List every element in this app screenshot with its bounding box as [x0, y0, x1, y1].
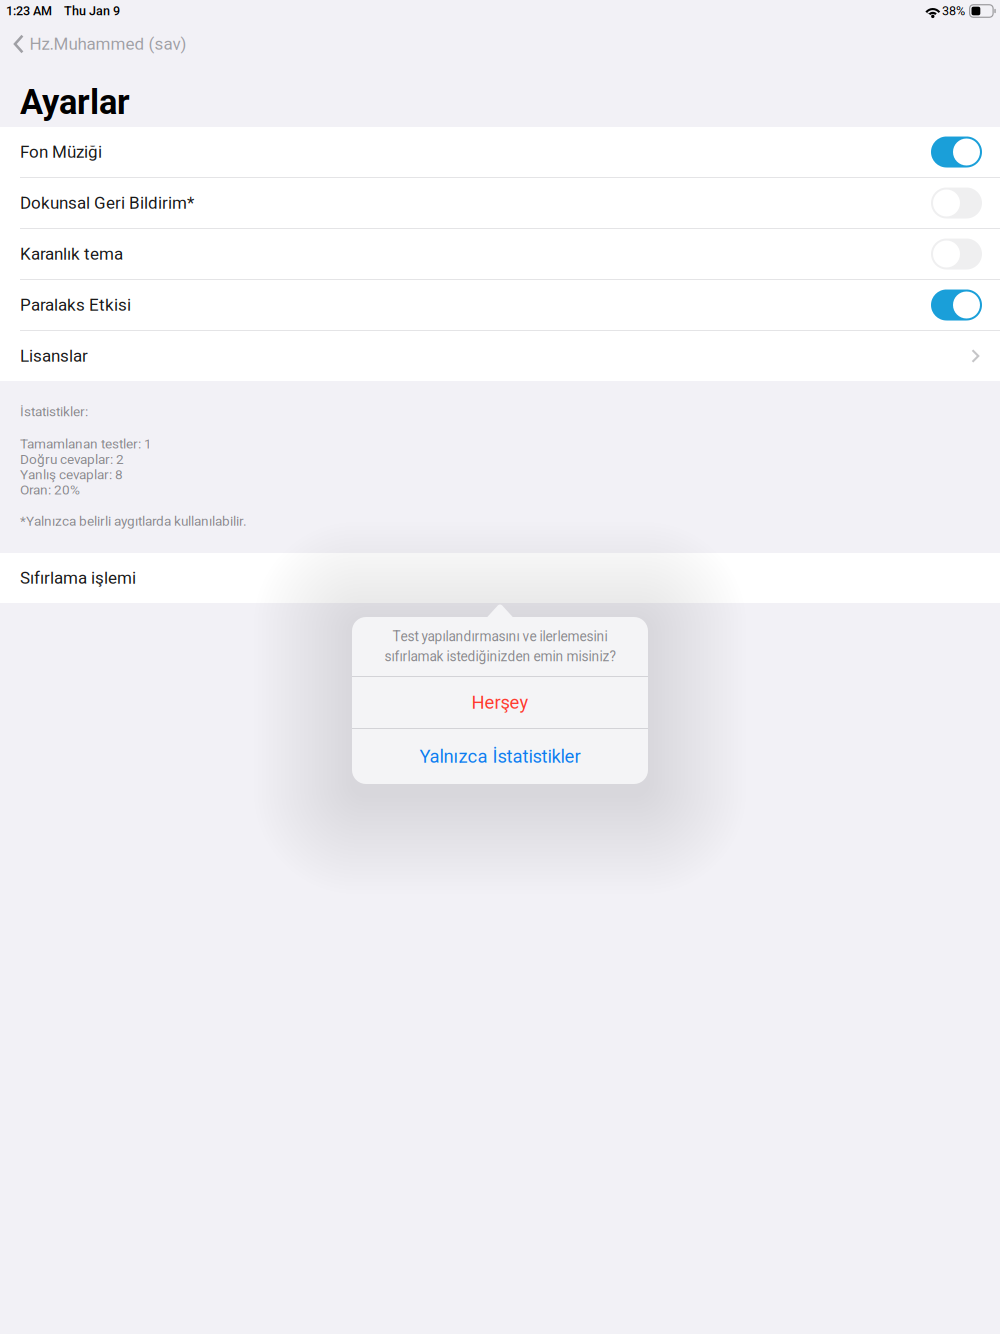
staticText: 38%: [942, 4, 965, 18]
staticText: Test yapılandırmasını ve ilerlemesini: [392, 628, 607, 644]
staticText: Dokunsal Geri Bildirim*: [20, 193, 194, 213]
staticText: Yanlış cevaplar: 8: [20, 467, 123, 482]
button[interactable]: Yalnızca İstatistikler: [352, 729, 648, 784]
staticText: Tamamlanan testler: 1: [20, 436, 152, 452]
button[interactable]: Dokunsal Geri Bildirim*: [0, 178, 1000, 228]
staticText: Karanlık tema: [20, 244, 123, 264]
staticText: Ayarlar: [20, 82, 130, 122]
staticText: Thu Jan 9: [64, 4, 120, 18]
staticText: Lisanslar: [20, 346, 88, 366]
button[interactable]: Fon Müziği: [0, 127, 1000, 177]
staticText: Hz.Muhammed (sav): [29, 34, 186, 54]
button[interactable]: Lisanslar: [0, 331, 1000, 381]
staticText: İstatistikler:: [20, 404, 88, 420]
button[interactable]: Paralaks Etkisi: [0, 280, 1000, 330]
staticText: Herşey: [471, 692, 528, 713]
staticText: Yalnızca İstatistikler: [419, 746, 580, 767]
button[interactable]: Herşey: [352, 677, 648, 728]
staticText: sıfırlamak istediğinizden emin misiniz?: [384, 648, 615, 665]
staticText: Sıfırlama işlemi: [20, 568, 136, 588]
staticText: Paralaks Etkisi: [20, 295, 131, 315]
button[interactable]: Karanlık tema: [0, 229, 1000, 279]
staticText: 1:23 AM: [6, 4, 52, 18]
button[interactable]: Sıfırlama işlemi: [0, 553, 1000, 603]
staticText: Fon Müziği: [20, 142, 102, 162]
staticText: Oran: 20%: [20, 482, 80, 498]
staticText: Doğru cevaplar: 2: [20, 451, 124, 467]
staticText: *Yalnızca belirli aygıtlarda kullanılabi…: [20, 513, 247, 529]
button[interactable]: Back to Hz.Muhammed (sav): [0, 22, 1000, 66]
